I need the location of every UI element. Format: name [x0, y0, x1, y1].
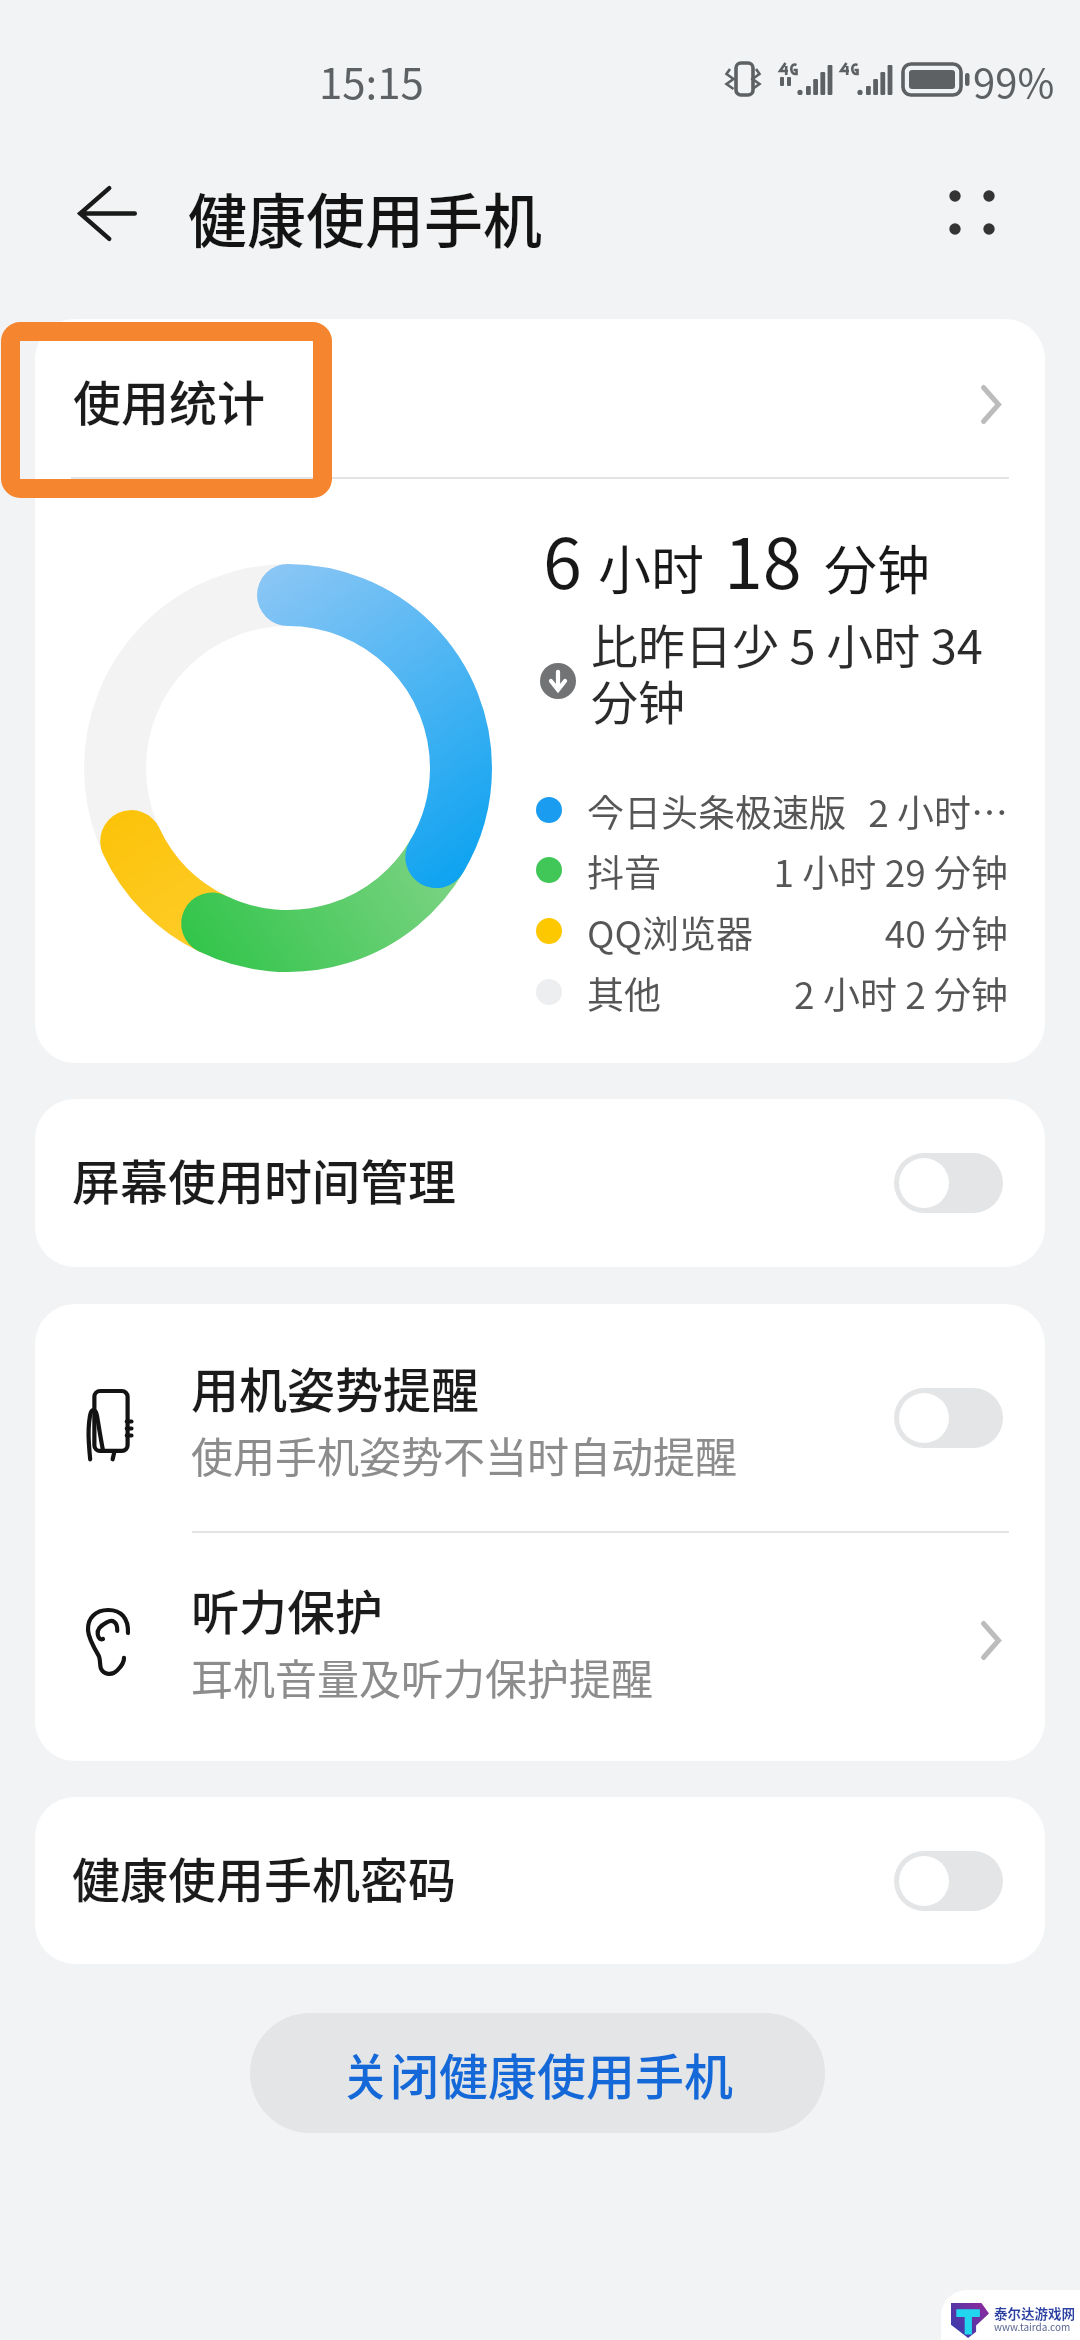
staticText: 2 小时… — [587, 784, 1008, 838]
staticText: QQ浏览器 — [587, 905, 753, 959]
staticText: 其他 — [587, 966, 661, 1020]
staticText: 使用统计 — [73, 365, 266, 435]
staticText: 小时 — [598, 529, 704, 606]
staticText: 6 — [543, 508, 582, 609]
staticText: 15:15 — [319, 50, 424, 111]
staticText: 关闭健康使用手机 — [341, 2038, 734, 2109]
button[interactable]: 用机姿势提醒 — [894, 1388, 1003, 1448]
button[interactable]: 使用统计 — [35, 319, 1045, 477]
button[interactable]: 健康使用手机密码 — [35, 1797, 1045, 1964]
staticText: 抖音 — [587, 844, 661, 898]
staticText: 分钟 — [824, 529, 930, 606]
staticText: 泰尔达游戏网 — [994, 2303, 1075, 2323]
staticText: 用机姿势提醒 — [191, 1352, 480, 1422]
button[interactable]: More options — [920, 150, 1024, 254]
staticText: 比昨日少 5 小时 34 分钟 — [591, 609, 1019, 733]
staticText: 使用手机姿势不当时自动提醒 — [191, 1424, 738, 1485]
button[interactable]: 关闭健康使用手机 — [250, 2013, 825, 2133]
staticText: 今日头条极速版 — [587, 784, 846, 838]
button[interactable]: 用机姿势提醒 — [35, 1304, 1045, 1531]
staticText: 1 小时 29 分钟 — [587, 844, 1008, 898]
staticText: www.tairda.com — [994, 2319, 1071, 2333]
staticText: 健康使用手机密码 — [72, 1842, 457, 1912]
staticText: 2 小时 2 分钟 — [587, 966, 1008, 1020]
button[interactable]: 健康使用手机密码 — [894, 1851, 1003, 1911]
staticText: 健康使用手机 — [188, 175, 543, 260]
button[interactable]: 屏幕使用时间管理 — [894, 1153, 1003, 1213]
button[interactable]: Back — [24, 135, 190, 285]
button[interactable]: 屏幕使用时间管理 — [35, 1099, 1045, 1267]
staticText: 耳机音量及听力保护提醒 — [191, 1646, 654, 1707]
button[interactable]: 听力保护 — [35, 1532, 1045, 1761]
staticText: 40 分钟 — [587, 905, 1008, 959]
staticText: 99% — [973, 52, 1055, 110]
staticText: 听力保护 — [191, 1574, 384, 1644]
staticText: 18 — [724, 508, 802, 609]
staticText: 屏幕使用时间管理 — [72, 1144, 457, 1214]
